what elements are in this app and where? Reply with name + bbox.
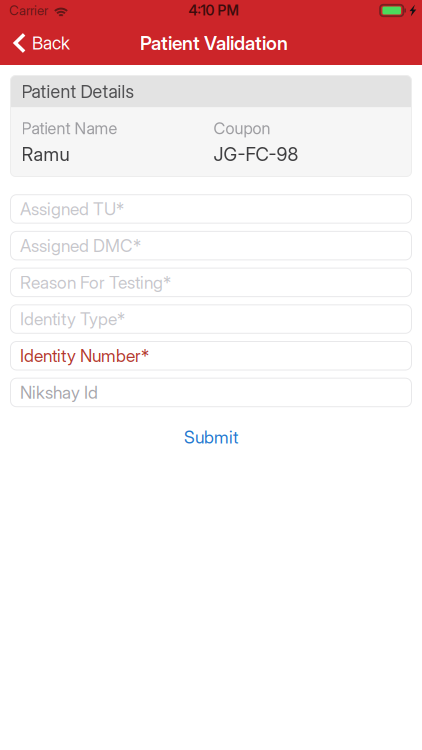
button[interactable]: Reason For Testing* xyxy=(10,268,411,297)
staticText: Carrier xyxy=(9,2,48,18)
staticText: JG-FC-98 xyxy=(213,143,298,165)
staticText: Patient Validation xyxy=(140,31,288,54)
staticText: Nikshay Id xyxy=(20,382,98,403)
button[interactable]: Assigned DMC* xyxy=(10,231,411,260)
staticText: Ramu xyxy=(21,143,69,165)
staticText: Identity Type* xyxy=(20,309,125,330)
button[interactable]: Assigned TU* xyxy=(10,195,411,223)
staticText: Coupon xyxy=(213,118,270,138)
staticText: Assigned DMC* xyxy=(20,235,141,256)
staticText: 4:10 PM xyxy=(188,2,238,19)
staticText: Submit xyxy=(184,427,238,448)
staticText: Patient Details xyxy=(21,81,133,102)
staticText: Reason For Testing* xyxy=(20,272,171,293)
staticText: Assigned TU* xyxy=(20,198,124,219)
staticText: Identity Number* xyxy=(20,345,149,366)
staticText: Back xyxy=(32,32,70,54)
button[interactable]: Back xyxy=(0,21,95,65)
button[interactable]: Nikshay Id xyxy=(10,378,411,407)
staticText: Patient Name xyxy=(21,118,117,138)
button[interactable]: Submit xyxy=(166,421,256,454)
button[interactable]: Identity Type* xyxy=(10,305,411,333)
button[interactable]: Identity Number* xyxy=(10,341,411,370)
